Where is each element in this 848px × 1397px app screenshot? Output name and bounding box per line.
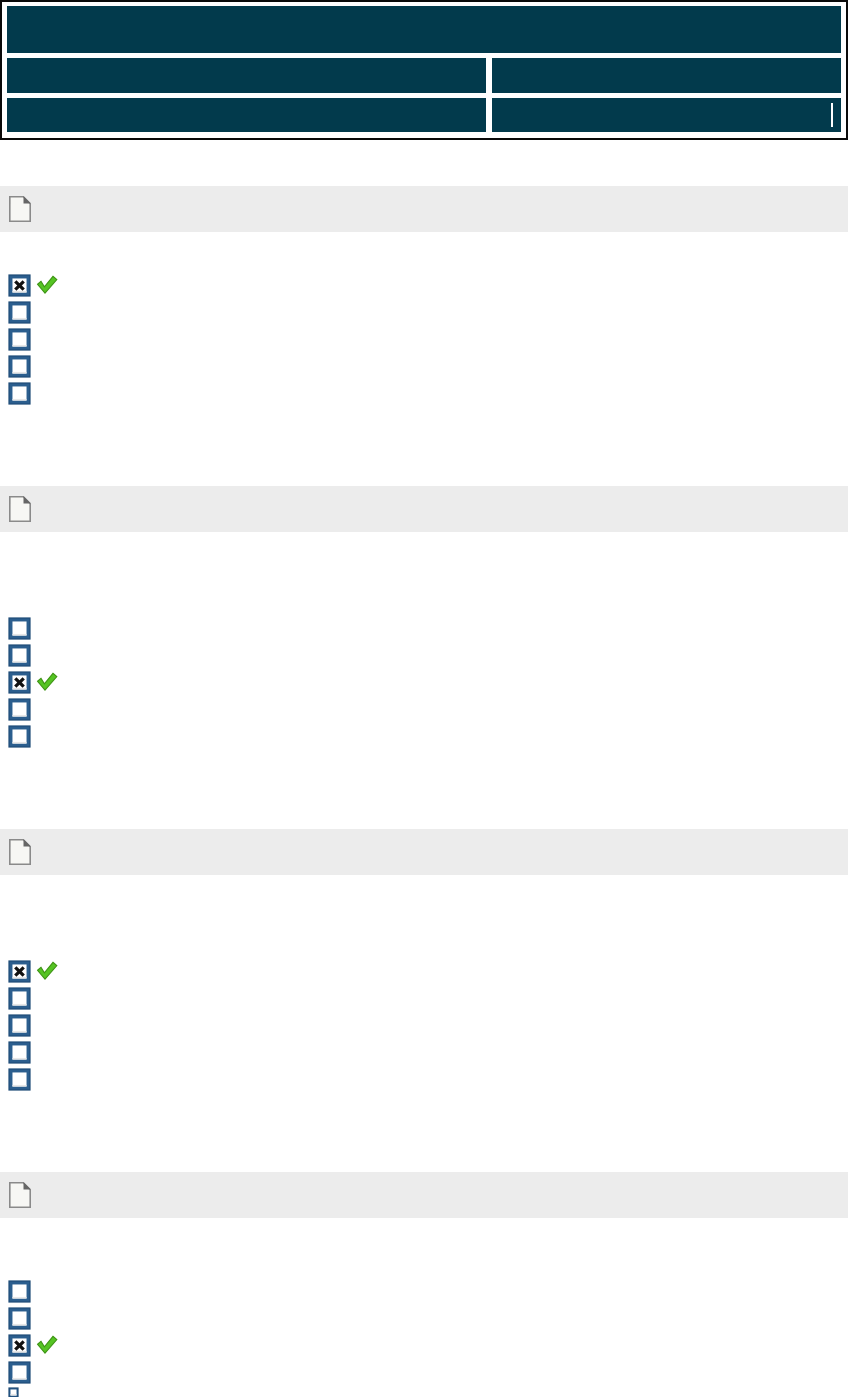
button[interactable]: Document: [0, 829, 848, 875]
button[interactable]: Option: [0, 987, 848, 1009]
other: Document: [9, 196, 31, 222]
button[interactable]: Selected option: [0, 671, 848, 693]
button[interactable]: Selected option: [0, 960, 848, 982]
button[interactable]: Option: [0, 328, 848, 350]
button[interactable]: Selected option: [0, 1334, 848, 1356]
button[interactable]: Option: [0, 644, 848, 666]
button[interactable]: Option: [0, 1068, 848, 1090]
button[interactable]: Document: [0, 186, 848, 232]
button[interactable]: Option: [0, 1361, 848, 1383]
other: Document: [9, 496, 31, 522]
button[interactable]: Option: [0, 355, 848, 377]
button[interactable]: [492, 98, 841, 132]
button[interactable]: Document: [0, 1172, 848, 1218]
other: Document: [9, 839, 31, 865]
button[interactable]: Selected option: [0, 274, 848, 296]
button[interactable]: Option: [0, 698, 848, 720]
button[interactable]: Option: [0, 617, 848, 639]
button[interactable]: Option: [0, 1388, 848, 1397]
button[interactable]: Option: [0, 1014, 848, 1036]
button[interactable]: Option: [0, 1041, 848, 1063]
button[interactable]: Option: [0, 301, 848, 323]
button[interactable]: Option: [0, 382, 848, 404]
button[interactable]: Option: [0, 1280, 848, 1302]
button[interactable]: Option: [0, 1307, 848, 1329]
other: Document: [9, 1182, 31, 1208]
button[interactable]: Option: [0, 725, 848, 747]
button[interactable]: Document: [0, 486, 848, 532]
